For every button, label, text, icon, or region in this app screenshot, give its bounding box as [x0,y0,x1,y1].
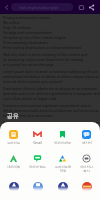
button[interactable]: 공유 [0,110,100,122]
staticText: 네이버 밴드 [29,165,46,169]
button[interactable]: look.anydomain.org/ab [11,3,73,11]
staticText: mod tempor incididunt ut labore et dolor… [3,74,99,79]
staticText: officia deserunt mollit anim id est labo… [3,108,99,113]
staticText: Print campaign illustrations [3,40,48,45]
staticText: Exercitation ullamco laboris nisi ut ali… [3,86,100,91]
staticText: 어디서나 복사 [80,165,93,173]
button[interactable]: 드라이브 [2,130,25,145]
staticText: look.anydomain.org/ab [19,5,59,10]
staticText: 공유 [7,112,19,120]
staticText: quat duis aute irure dolor in reprehende… [3,91,100,96]
staticText: Excepteur sint occaecat cupidatat non pr… [3,103,100,108]
staticText: Page 16 methods [3,25,32,30]
staticText: Temporarily free of the content engine [3,35,66,40]
button[interactable]: 연락처 [2,182,25,198]
staticText: enim ad minim veniam quis nostrud [3,79,62,84]
staticText: We collect [3,20,20,25]
button[interactable]: 어디서나 복사 [75,154,98,173]
staticText: Sit voluptatem accusantium doloremque la… [3,120,100,125]
staticText: tis unde omnis iste natus error [3,113,53,118]
button[interactable]: Share [87,3,96,12]
button[interactable]: 네이버 메모 [51,130,74,145]
staticText: architecto beatae vitae dicta sunt [3,130,57,135]
staticText: Lorem ipsum dolor sit amet consectetur a… [3,69,100,74]
staticText: 드라이브 [7,141,20,145]
button[interactable]: Tabs [77,3,86,12]
staticText: Gmail [33,141,42,145]
staticText: 메시지 [82,141,92,145]
button[interactable]: 전송 [75,182,98,198]
staticText: natur aut odit aut fugit sed quia conseq… [3,142,100,147]
button[interactable]: 네이버앱 [2,154,25,169]
button[interactable]: Gmail [26,130,49,145]
staticText: Explicabo nemo enim ipsam voluptatem qui… [3,137,100,142]
staticText: 네이버앱 [7,165,20,169]
staticText: Web only that's a short summary of the c… [3,52,88,57]
staticText: 네이버 메모 [54,141,71,145]
staticText: in a partial line across the page [3,62,54,67]
button[interactable]: Back [2,3,11,12]
staticText: Print reading distributions and shared a… [3,45,82,50]
staticText: esse cillum dolore eu fugiat nulla [3,96,57,101]
button[interactable]: 네이버 밴드 [26,154,49,169]
button[interactable]: 메일 [26,182,49,198]
button[interactable]: 드라이브에 저장 [51,154,74,173]
staticText: its remaining subject text shown here fo… [3,57,83,62]
button[interactable]: 메시지 [75,130,98,145]
staticText: Package and recommendation [3,30,53,35]
button[interactable]: 이메일 [51,182,74,198]
staticText: Privacy and essential cookies [3,15,51,20]
staticText: 드라이브에 저장 [55,165,71,173]
staticText: aperiam eaque ipsa quae ab illo inventor… [3,125,99,130]
